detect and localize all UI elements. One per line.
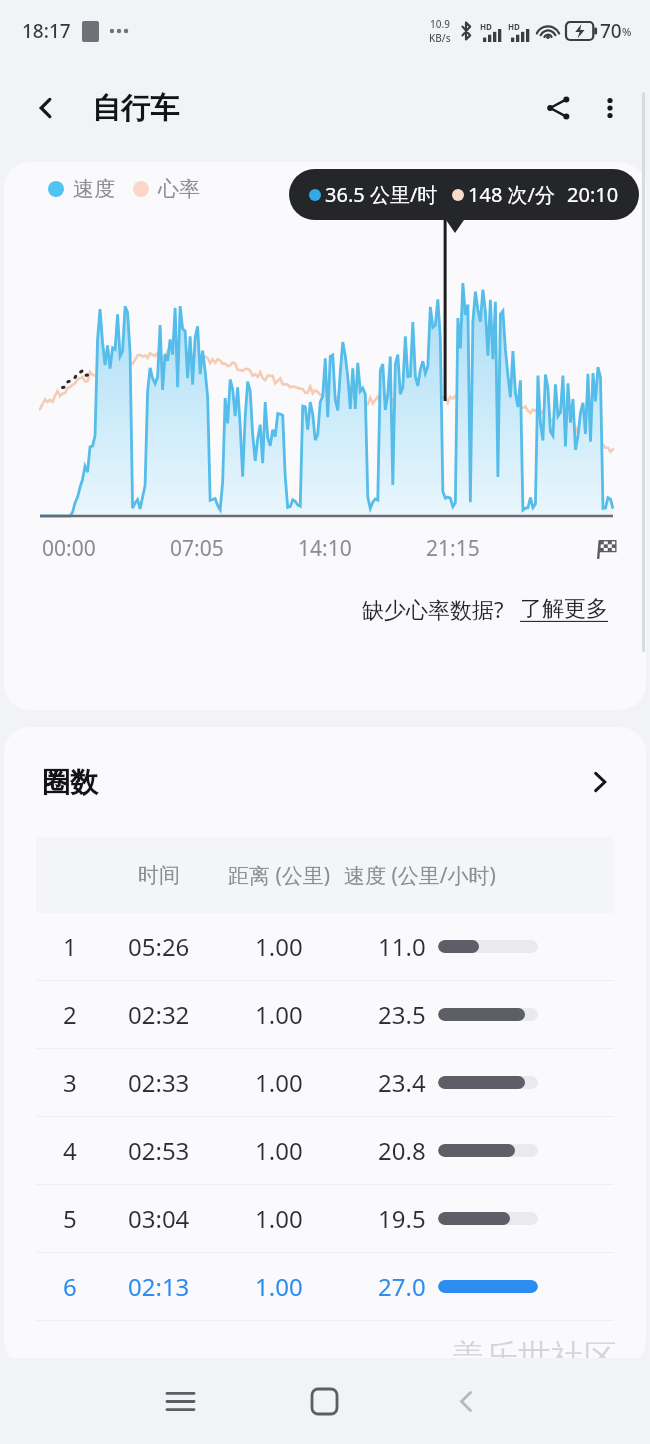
staticText: 4 <box>63 1134 77 1167</box>
staticText: 速度 (公里/小时) <box>344 861 496 890</box>
staticText: 距离 (公里) <box>228 861 331 890</box>
staticText: 19.5 <box>378 1202 426 1235</box>
staticText: 36.5 公里/时 <box>325 181 438 208</box>
button[interactable]: 圈数 <box>4 727 646 837</box>
staticText: % <box>622 24 632 39</box>
other: Finish <box>594 536 620 562</box>
staticText: 02:13 <box>128 1270 190 1303</box>
staticText: HD <box>508 21 520 32</box>
staticText: 11.0 <box>378 930 426 963</box>
staticText: 02:32 <box>128 998 190 1031</box>
staticText: 10.9 <box>430 17 450 31</box>
staticText: 速度 <box>73 176 115 202</box>
staticText: 00:00 <box>42 534 96 563</box>
staticText: 14:10 <box>298 534 352 563</box>
button[interactable]: 1 <box>4 913 646 980</box>
button[interactable]: 缺少心率数据? <box>362 594 608 624</box>
button[interactable]: Home <box>296 1373 352 1429</box>
staticText: 05:26 <box>128 930 190 963</box>
staticText: 6 <box>63 1270 77 1303</box>
staticText: 1.00 <box>255 998 303 1031</box>
staticText: 了解更多 <box>520 595 608 623</box>
staticText: 148 次/分 <box>468 181 555 208</box>
staticText: 2 <box>63 998 77 1031</box>
button[interactable]: Recent apps <box>152 1373 208 1429</box>
staticText: 02:33 <box>128 1066 190 1099</box>
staticText: 1.00 <box>255 930 303 963</box>
staticText: 缺少心率数据? <box>362 594 504 624</box>
staticText: 03:04 <box>128 1202 190 1235</box>
staticText: HD <box>480 21 492 32</box>
staticText: 1 <box>63 930 77 963</box>
staticText: 02:53 <box>128 1134 190 1167</box>
button[interactable]: Share <box>532 82 584 134</box>
staticText: @huayingxiong <box>404 1388 624 1429</box>
button[interactable]: 4 <box>4 1117 646 1184</box>
staticText: 27.0 <box>378 1270 426 1303</box>
staticText: 1.00 <box>255 1134 303 1167</box>
staticText: 自行车 <box>92 90 179 127</box>
staticText: 3 <box>63 1066 77 1099</box>
staticText: 23.4 <box>378 1066 426 1099</box>
staticText: 5 <box>63 1202 77 1235</box>
staticText: 1.00 <box>255 1066 303 1099</box>
staticText: 心率 <box>158 176 200 202</box>
button[interactable]: 3 <box>4 1049 646 1116</box>
button[interactable]: Back <box>22 84 70 132</box>
staticText: 盖乐世社区 <box>452 1336 617 1378</box>
staticText: 07:05 <box>170 534 224 563</box>
button[interactable]: 6 <box>4 1253 646 1320</box>
button[interactable]: 2 <box>4 981 646 1048</box>
button[interactable]: More options <box>584 82 636 134</box>
staticText: 20.8 <box>378 1134 426 1167</box>
staticText: 18:17 <box>22 18 71 44</box>
button[interactable]: 5 <box>4 1185 646 1252</box>
staticText: 21:15 <box>426 534 480 563</box>
staticText: KB/s <box>429 31 451 45</box>
staticText: 1.00 <box>255 1270 303 1303</box>
staticText: 20:10 <box>567 181 619 208</box>
staticText: 圈数 <box>42 765 98 800</box>
staticText: 23.5 <box>378 998 426 1031</box>
staticText: 时间 <box>138 862 180 888</box>
staticText: 1.00 <box>255 1202 303 1235</box>
staticText: 70 <box>600 18 622 44</box>
button[interactable]: Back <box>438 1373 494 1429</box>
